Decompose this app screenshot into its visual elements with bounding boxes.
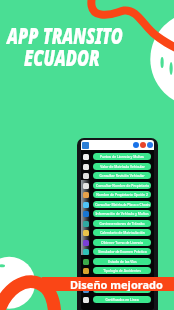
button[interactable]: Valor de Matrícula Vehicular <box>81 163 154 170</box>
button[interactable]: Estado de las Vías <box>81 258 154 265</box>
staticText: Estado de las Vías <box>108 259 137 264</box>
button[interactable]: Consultar Matrícula Placa o Chasis <box>81 201 154 208</box>
button[interactable]: Tipología de Accidentes <box>81 267 154 274</box>
staticText: Consultar Puntos Licencia <box>101 278 143 283</box>
button[interactable]: Consultar Puntos Licencia <box>81 277 154 284</box>
other: Search <box>133 142 139 148</box>
button[interactable]: Certificados en Linea <box>81 296 154 303</box>
staticText: Nombre de Propietario Opción 2 <box>96 192 148 197</box>
button[interactable]: Obtener Turno de Licencia <box>81 239 154 246</box>
button[interactable]: Consultar Nombre de Propietario <box>81 182 154 189</box>
button[interactable]: Puntos de Licencia y Multas <box>81 153 154 160</box>
button[interactable]: Trámites Vehiculares <box>81 286 154 293</box>
button[interactable]: Calendario de Matriculación <box>81 229 154 236</box>
staticText: Certificados en Linea <box>105 297 139 302</box>
staticText: Tipología de Accidentes <box>103 268 141 273</box>
button[interactable]: Contravenciones de Tránsito <box>81 220 154 227</box>
staticText: Consultar Nombre de Propietario <box>96 183 149 188</box>
staticText: Contravenciones de Tránsito <box>99 221 145 226</box>
staticText: Consultar Revisión Vehicular <box>99 173 145 178</box>
staticText: APP TRANSITO <box>7 19 123 50</box>
staticText: Calendario de Matriculación <box>100 230 145 235</box>
button[interactable]: Nombre de Propietario Opción 2 <box>81 191 154 198</box>
staticText: Puntos de Licencia y Multas <box>100 154 144 159</box>
staticText: Consultar Matrícula Placa o Chasis <box>95 202 150 207</box>
button[interactable]: Consultar Revisión Vehicular <box>81 172 154 179</box>
staticText: Información de Vehículo y Multas <box>95 211 149 216</box>
staticText: ECUADOR <box>24 41 100 72</box>
staticText: Diseño mejorado <box>70 277 163 291</box>
button[interactable]: Simulador de Examen Práctico <box>81 248 154 255</box>
button[interactable]: Información de Vehículo y Multas <box>81 210 154 217</box>
staticText: Valor de Matrícula Vehicular <box>100 164 145 169</box>
staticText: Trámites Vehiculares <box>106 287 139 292</box>
staticText: Simulador de Examen Práctico <box>98 249 147 254</box>
staticText: Obtener Turno de Licencia <box>101 240 143 245</box>
